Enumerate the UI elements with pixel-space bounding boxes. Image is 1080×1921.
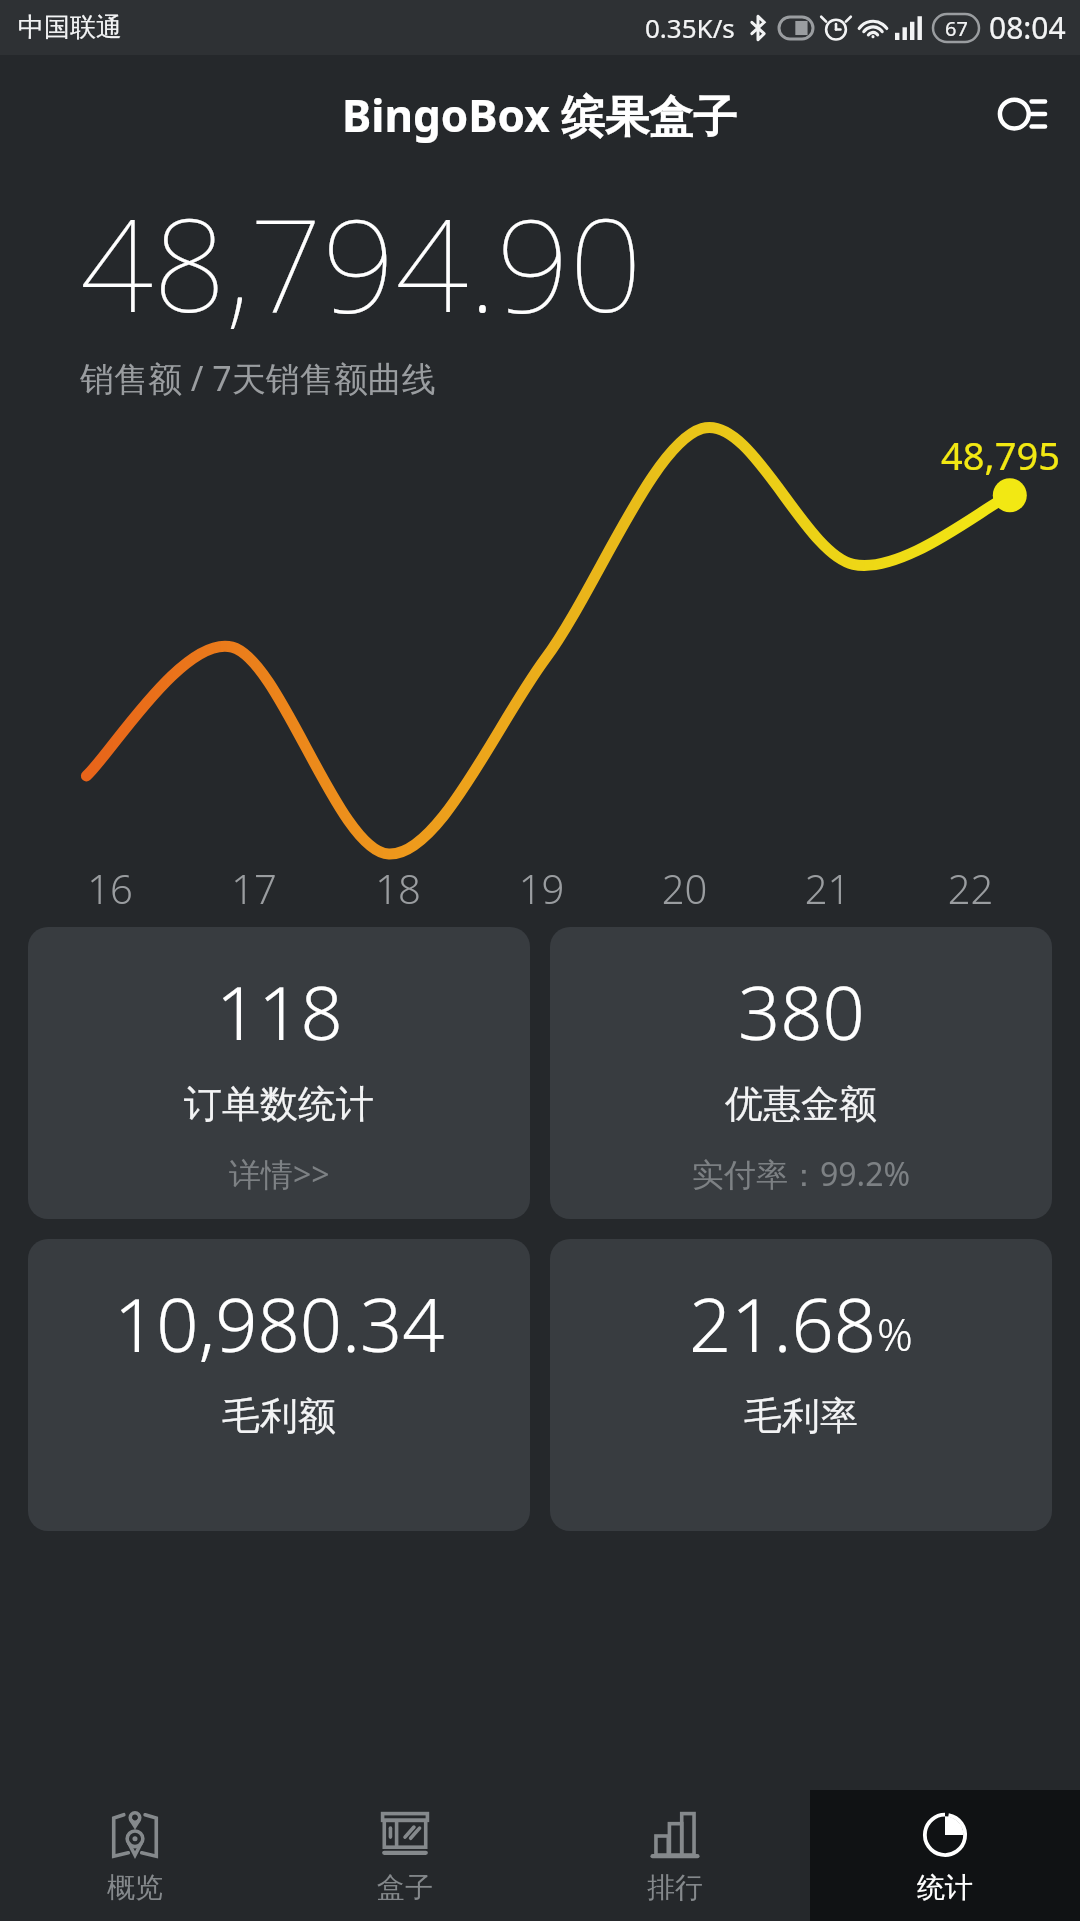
staticText: 0.35K/s [645,10,735,45]
staticText: 10,980.34 [114,1273,445,1374]
staticText: 16 [38,861,182,915]
staticText: 盒子 [377,1870,433,1905]
staticText: 中国联通 [18,11,122,44]
button[interactable]: 概览 [0,1790,270,1921]
staticText: 118 [216,961,343,1062]
button[interactable]: 盒子 [270,1790,540,1921]
staticText: 19 [470,861,613,915]
button[interactable]: 118 [28,927,530,1219]
staticText: 48,794.90 [80,175,643,349]
staticText: 排行 [647,1870,703,1905]
button[interactable]: 10,980.34 [28,1239,530,1531]
button[interactable]: 21.68 [550,1239,1052,1531]
staticText: 详情>> [229,1152,330,1196]
staticText: 订单数统计 [184,1080,374,1128]
button[interactable]: Search [988,81,1056,149]
staticText: 实付率：99.2% [692,1152,911,1196]
staticText: 48,795 [941,429,1060,481]
staticText: 毛利率 [744,1392,858,1440]
staticText: 08:04 [989,7,1066,48]
button[interactable]: 380 [550,927,1052,1219]
staticText: 17 [182,861,326,915]
staticText: 概览 [107,1870,163,1905]
staticText: 67 [945,15,968,42]
staticText: 优惠金额 [725,1080,877,1128]
staticText: 21 [756,861,899,915]
staticText: 18 [326,861,470,915]
button[interactable]: 排行 [540,1790,810,1921]
staticText: 毛利额 [222,1392,336,1440]
staticText: 20 [613,861,756,915]
staticText: 统计 [917,1870,973,1905]
button[interactable]: 统计 [810,1790,1080,1921]
staticText: 销售额 / 7天销售额曲线 [80,355,436,401]
staticText: BingoBox 缤果盒子 [342,85,738,145]
staticText: 21.68 [689,1273,877,1374]
staticText: 380 [738,961,865,1062]
staticText: % [877,1304,913,1364]
staticText: 22 [899,861,1042,915]
